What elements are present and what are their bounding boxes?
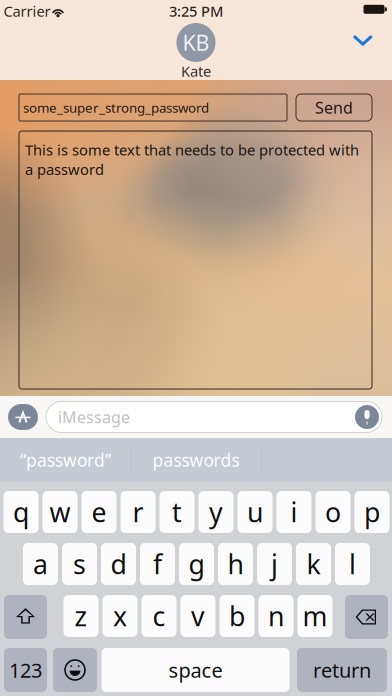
staticText: l xyxy=(349,546,356,582)
staticText: k xyxy=(306,546,320,582)
staticText: Kate xyxy=(181,61,211,81)
button[interactable]: KB xyxy=(157,23,235,81)
button[interactable]: Send xyxy=(296,94,372,121)
button[interactable]: d xyxy=(101,543,136,585)
button[interactable]: v xyxy=(180,595,215,637)
button[interactable]: i xyxy=(276,491,311,533)
button[interactable]: w xyxy=(42,491,77,533)
button[interactable]: a xyxy=(23,543,58,585)
staticText: passwords xyxy=(152,448,239,471)
button[interactable]: u xyxy=(237,491,272,533)
button[interactable]: Delete xyxy=(345,595,388,639)
staticText: Carrier xyxy=(3,1,50,21)
button[interactable]: App Store xyxy=(0,396,46,437)
button[interactable]: 123 xyxy=(4,648,47,692)
button[interactable]: x xyxy=(102,595,137,637)
staticText: e xyxy=(91,494,106,530)
staticText: m xyxy=(302,598,327,634)
staticText: i xyxy=(290,494,297,530)
staticText: some_super_strong_password xyxy=(23,99,209,116)
button[interactable]: g xyxy=(179,543,214,585)
button[interactable]: b xyxy=(219,595,254,637)
button[interactable]: y xyxy=(198,491,233,533)
staticText: b xyxy=(229,598,245,634)
staticText: v xyxy=(191,598,205,634)
button[interactable]: r xyxy=(120,491,155,533)
staticText: z xyxy=(74,598,87,634)
staticText: KB xyxy=(182,28,209,57)
staticText: 123 xyxy=(9,657,42,683)
button[interactable]: q xyxy=(3,491,38,533)
staticText: r xyxy=(132,494,143,530)
button[interactable]: k xyxy=(296,543,331,585)
button[interactable]: return xyxy=(297,648,387,692)
staticText: return xyxy=(313,657,371,683)
button[interactable]: t xyxy=(159,491,194,533)
button[interactable]: Shift xyxy=(4,595,47,639)
staticText: u xyxy=(247,494,263,530)
button[interactable]: f xyxy=(140,543,175,585)
button[interactable]: passwords xyxy=(130,438,261,482)
button[interactable]: h xyxy=(218,543,253,585)
button[interactable]: o xyxy=(315,491,350,533)
button[interactable]: p xyxy=(354,491,389,533)
staticText: g xyxy=(188,546,204,582)
staticText: d xyxy=(110,546,126,582)
staticText: h xyxy=(227,546,243,582)
button[interactable]: z xyxy=(63,595,98,637)
button[interactable]: m xyxy=(297,595,332,637)
staticText: “password” xyxy=(20,448,111,471)
staticText: q xyxy=(13,494,29,530)
staticText: p xyxy=(364,494,380,530)
staticText: 3:25 PM xyxy=(169,1,223,21)
staticText: w xyxy=(49,494,70,530)
button[interactable]: e xyxy=(81,491,116,533)
staticText: This is some text that needs to be prote… xyxy=(25,140,359,179)
button[interactable]: some_super_strong_password xyxy=(19,94,287,121)
button[interactable]: space xyxy=(101,648,289,692)
staticText: Send xyxy=(315,97,353,118)
button[interactable]: n xyxy=(258,595,293,637)
staticText: a xyxy=(33,546,48,582)
staticText: iMessage xyxy=(58,406,130,428)
staticText: c xyxy=(152,598,165,634)
staticText: s xyxy=(73,546,86,582)
button[interactable]: Collapse details xyxy=(341,19,385,63)
staticText: j xyxy=(271,546,278,582)
staticText: space xyxy=(168,657,222,683)
staticText: o xyxy=(325,494,341,530)
button[interactable]: s xyxy=(62,543,97,585)
button[interactable]: c xyxy=(141,595,176,637)
button[interactable]: Emoji xyxy=(53,648,97,692)
staticText: f xyxy=(153,546,162,582)
button[interactable]: “password” xyxy=(0,438,131,482)
staticText: n xyxy=(268,598,284,634)
staticText: x xyxy=(113,598,127,634)
staticText: y xyxy=(209,494,223,530)
button[interactable]: j xyxy=(257,543,292,585)
button[interactable]: l xyxy=(335,543,370,585)
staticText: t xyxy=(172,494,182,530)
